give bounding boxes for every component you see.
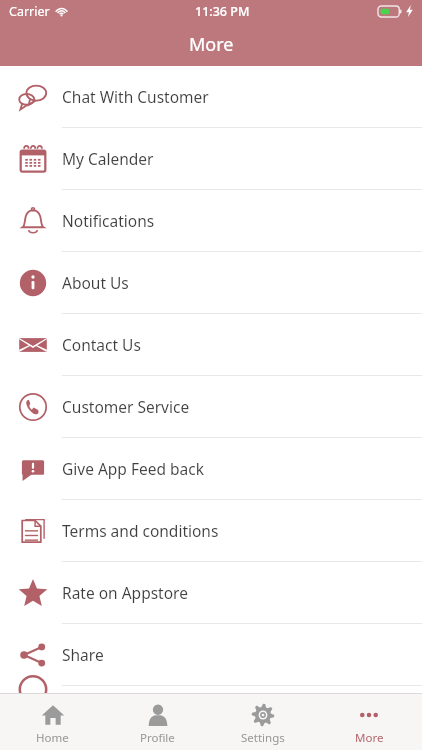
staticText: Customer Service xyxy=(62,396,190,417)
staticText: Chat With Customer xyxy=(62,86,209,107)
button[interactable]: Profile xyxy=(105,694,210,750)
staticText: More xyxy=(189,32,234,57)
staticText: Carrier xyxy=(9,3,50,20)
staticText: Rate on Appstore xyxy=(62,582,188,603)
button[interactable]: More options xyxy=(0,686,422,693)
staticText: Settings xyxy=(241,730,285,746)
button[interactable]: Give App Feed back xyxy=(0,438,422,499)
button[interactable]: About Us xyxy=(0,252,422,313)
staticText: Share xyxy=(62,644,104,665)
staticText: Profile xyxy=(140,730,175,746)
button[interactable]: Chat With Customer xyxy=(0,66,422,127)
button[interactable]: My Calender xyxy=(0,128,422,189)
staticText: Notifications xyxy=(62,210,155,231)
staticText: 11:36 PM xyxy=(195,3,250,20)
button[interactable]: Notifications xyxy=(0,190,422,251)
button[interactable]: Terms and conditions xyxy=(0,500,422,561)
staticText: More xyxy=(355,730,384,746)
button[interactable]: Home xyxy=(0,694,105,750)
button[interactable]: More xyxy=(316,694,422,750)
button[interactable]: Settings xyxy=(210,694,316,750)
button[interactable]: Contact Us xyxy=(0,314,422,375)
staticText: My Calender xyxy=(62,148,154,169)
staticText: Give App Feed back xyxy=(62,458,204,479)
button[interactable]: Rate on Appstore xyxy=(0,562,422,623)
staticText: Contact Us xyxy=(62,334,141,355)
staticText: Home xyxy=(36,730,69,746)
button[interactable]: Share xyxy=(0,624,422,685)
staticText: Terms and conditions xyxy=(62,520,219,541)
button[interactable]: Customer Service xyxy=(0,376,422,437)
staticText: About Us xyxy=(62,272,129,293)
